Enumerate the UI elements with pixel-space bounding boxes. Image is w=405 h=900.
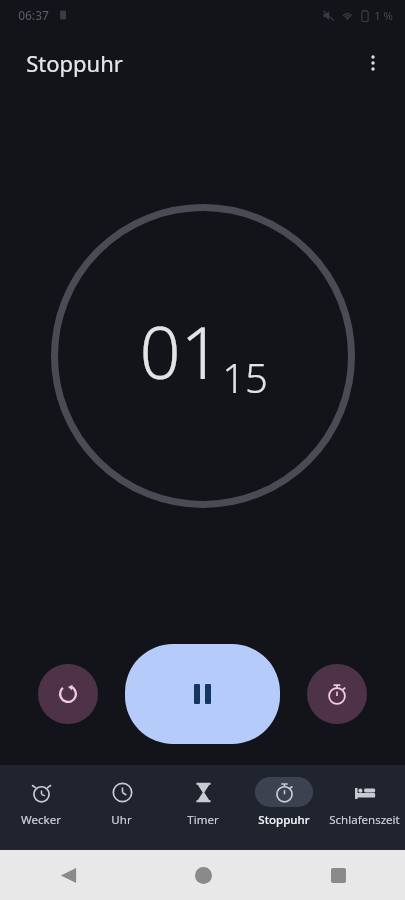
button[interactable]: Schlafenszeit xyxy=(324,765,405,828)
button[interactable]: Zurücksetzen xyxy=(38,664,98,724)
button[interactable]: Weitere Optionen xyxy=(351,41,395,85)
button[interactable]: Übersicht xyxy=(316,853,360,897)
staticText: Schlafenszeit xyxy=(329,812,400,828)
button[interactable]: Zurück xyxy=(46,853,90,897)
button[interactable]: Startbildschirm xyxy=(181,853,225,897)
staticText: 01 xyxy=(139,302,222,400)
staticText: Stoppuhr xyxy=(26,48,123,78)
staticText: Timer xyxy=(187,812,219,828)
staticText: Stoppuhr xyxy=(258,812,310,828)
button[interactable]: Wecker xyxy=(0,765,81,828)
button[interactable]: Uhr xyxy=(81,765,162,828)
button[interactable]: Runde xyxy=(307,664,367,724)
staticText: 06:37 xyxy=(18,7,49,23)
staticText: 1 % xyxy=(374,8,393,23)
staticText: Wecker xyxy=(21,812,61,828)
button[interactable]: Stoppuhr xyxy=(243,765,324,828)
staticText: 15 xyxy=(222,350,268,404)
button[interactable]: Timer xyxy=(162,765,243,828)
staticText: Uhr xyxy=(111,812,132,828)
button[interactable]: Pause xyxy=(125,644,280,744)
